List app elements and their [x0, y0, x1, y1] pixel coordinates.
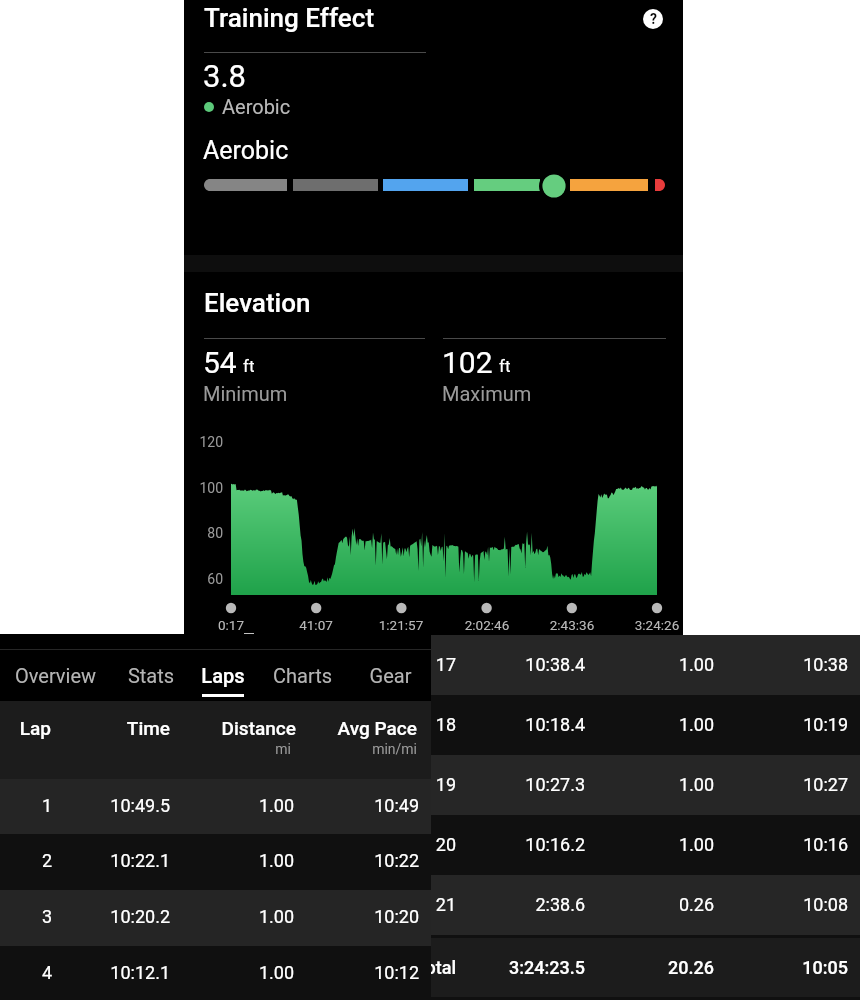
staticText: 21	[431, 894, 456, 915]
staticText: 54	[203, 345, 237, 380]
staticText: 4	[0, 962, 52, 983]
staticText: Distance	[169, 717, 296, 739]
staticText: 120	[184, 434, 223, 450]
staticText: 10:05	[714, 957, 848, 978]
staticText: 10:20	[294, 906, 419, 927]
staticText: 1.00	[585, 654, 714, 675]
button[interactable]: Laps	[191, 650, 255, 701]
staticText: 2:43:36	[527, 617, 617, 633]
staticText: 10:27	[714, 774, 848, 795]
staticText: Avg Pace	[296, 717, 417, 739]
staticText: 10:16	[714, 834, 848, 855]
button[interactable]: Charts	[255, 650, 350, 701]
button[interactable]: 2	[0, 834, 431, 890]
staticText: 10:08	[714, 894, 848, 915]
staticText: Maximum	[442, 382, 532, 405]
staticText: 60	[184, 571, 223, 587]
staticText: Elevation	[204, 288, 311, 318]
button[interactable]: 21	[431, 875, 860, 935]
staticText: 1.00	[170, 906, 294, 927]
button[interactable]: 19	[431, 755, 860, 815]
staticText: Minimum	[203, 382, 288, 405]
button[interactable]: Help	[643, 9, 663, 29]
staticText: Time	[51, 717, 170, 739]
staticText: 0.26	[585, 894, 714, 915]
staticText: 10:12	[294, 962, 419, 983]
staticText: Total	[431, 957, 456, 978]
button[interactable]: Stats	[111, 650, 191, 701]
button[interactable]: Gear	[350, 650, 431, 701]
staticText: 1.00	[585, 774, 714, 795]
staticText: Charts	[255, 664, 350, 687]
staticText: 18	[431, 714, 456, 735]
staticText: 1.00	[170, 850, 294, 871]
staticText: 3	[0, 906, 52, 927]
staticText: Gear	[350, 664, 431, 687]
staticText: 10:38.4	[456, 654, 585, 675]
staticText: 1.00	[585, 714, 714, 735]
staticText: 1	[0, 795, 52, 816]
staticText: 10:27.3	[456, 774, 585, 795]
staticText: Training Effect	[204, 3, 375, 33]
staticText: 10:38	[714, 654, 848, 675]
staticText: 10:20.2	[52, 906, 170, 927]
staticText: 1.00	[170, 962, 294, 983]
button[interactable]: Total	[431, 938, 860, 997]
staticText: 1.00	[170, 795, 294, 816]
button[interactable]: Overview	[0, 650, 111, 701]
staticText: 102	[442, 345, 493, 380]
staticText: 20	[431, 834, 456, 855]
staticText: 41:07	[271, 617, 361, 633]
staticText: Aerobic	[203, 136, 289, 165]
staticText: ft	[243, 356, 255, 376]
staticText: ft	[499, 356, 511, 376]
button[interactable]: 4	[0, 946, 431, 1000]
staticText: Stats	[111, 664, 191, 687]
staticText: min/mi	[296, 741, 417, 757]
staticText: 1.00	[585, 834, 714, 855]
staticText: 3.8	[203, 58, 247, 94]
staticText: 3:24:26	[612, 617, 702, 633]
staticText: 19	[431, 774, 456, 795]
staticText: Overview	[0, 664, 111, 687]
staticText: 10:22.1	[52, 850, 170, 871]
button[interactable]: 17	[431, 635, 860, 695]
staticText: ?	[650, 11, 657, 27]
staticText: Aerobic	[222, 95, 291, 118]
staticText: 100	[184, 480, 223, 496]
staticText: 80	[184, 525, 223, 541]
button[interactable]: 1	[0, 779, 431, 835]
staticText: 10:49.5	[52, 795, 170, 816]
staticText: 10:22	[294, 850, 419, 871]
staticText: 3:24:23.5	[456, 957, 585, 978]
staticText: 0:17	[186, 617, 276, 633]
staticText: 10:16.2	[456, 834, 585, 855]
staticText: 2:38.6	[456, 894, 585, 915]
button[interactable]: 18	[431, 695, 860, 755]
staticText: Lap	[0, 717, 51, 739]
staticText: 2:02:46	[442, 617, 532, 633]
staticText: 10:19	[714, 714, 848, 735]
staticText: Laps	[191, 664, 255, 687]
staticText: mi	[169, 741, 291, 757]
staticText: 10:49	[294, 795, 419, 816]
staticText: 20.26	[585, 957, 714, 978]
staticText: 17	[431, 654, 456, 675]
button[interactable]: 3	[0, 890, 431, 946]
staticText: 10:12.1	[52, 962, 170, 983]
staticText: 2	[0, 850, 52, 871]
staticText: 1:21:57	[356, 617, 446, 633]
button[interactable]: 20	[431, 815, 860, 875]
staticText: 10:18.4	[456, 714, 585, 735]
